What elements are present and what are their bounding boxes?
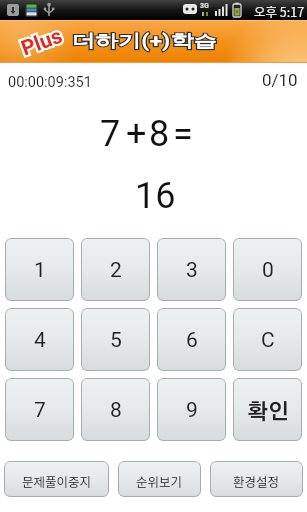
- staticText: 0/10: [262, 70, 298, 90]
- button[interactable]: 8: [81, 378, 150, 441]
- staticText: Plus: [18, 24, 66, 61]
- staticText: 8: [110, 398, 122, 423]
- staticText: 확인: [247, 402, 289, 423]
- button[interactable]: 확인: [233, 378, 302, 441]
- staticText: 7: [34, 398, 46, 423]
- button[interactable]: 2: [81, 238, 150, 301]
- staticText: 4: [34, 328, 46, 353]
- staticText: 1: [34, 258, 46, 283]
- staticText: 3: [186, 258, 198, 283]
- staticText: 2: [110, 258, 122, 283]
- staticText: Plus: [18, 24, 66, 61]
- staticText: 오후 5:17: [254, 2, 305, 20]
- staticText: 3G: [200, 2, 209, 10]
- button[interactable]: 9: [157, 378, 226, 441]
- staticText: =: [173, 113, 193, 155]
- button[interactable]: 순위보기: [118, 461, 201, 497]
- staticText: 0: [262, 258, 274, 283]
- button[interactable]: 0: [233, 238, 302, 301]
- staticText: 8: [149, 113, 170, 155]
- staticText: 더하기(+)학습: [72, 30, 217, 52]
- staticText: 9: [186, 398, 198, 423]
- button[interactable]: 4: [5, 308, 74, 371]
- staticText: 6: [186, 328, 198, 353]
- staticText: 더하기(+)학습: [72, 30, 217, 52]
- button[interactable]: 1: [5, 238, 74, 301]
- button[interactable]: 3: [157, 238, 226, 301]
- button[interactable]: 5: [81, 308, 150, 371]
- button[interactable]: 7: [5, 378, 74, 441]
- staticText: 00:00:09:351: [8, 74, 92, 91]
- staticText: C: [261, 328, 275, 353]
- staticText: 순위보기: [136, 472, 183, 490]
- staticText: 문제풀이중지: [22, 472, 92, 490]
- button[interactable]: C: [233, 308, 302, 371]
- staticText: 5: [110, 328, 122, 353]
- button[interactable]: 환경설정: [210, 461, 303, 497]
- staticText: +: [126, 113, 147, 155]
- button[interactable]: 6: [157, 308, 226, 371]
- staticText: 7: [100, 113, 121, 155]
- staticText: 환경설정: [233, 472, 280, 490]
- button[interactable]: 문제풀이중지: [4, 461, 109, 497]
- staticText: 16: [135, 175, 176, 217]
